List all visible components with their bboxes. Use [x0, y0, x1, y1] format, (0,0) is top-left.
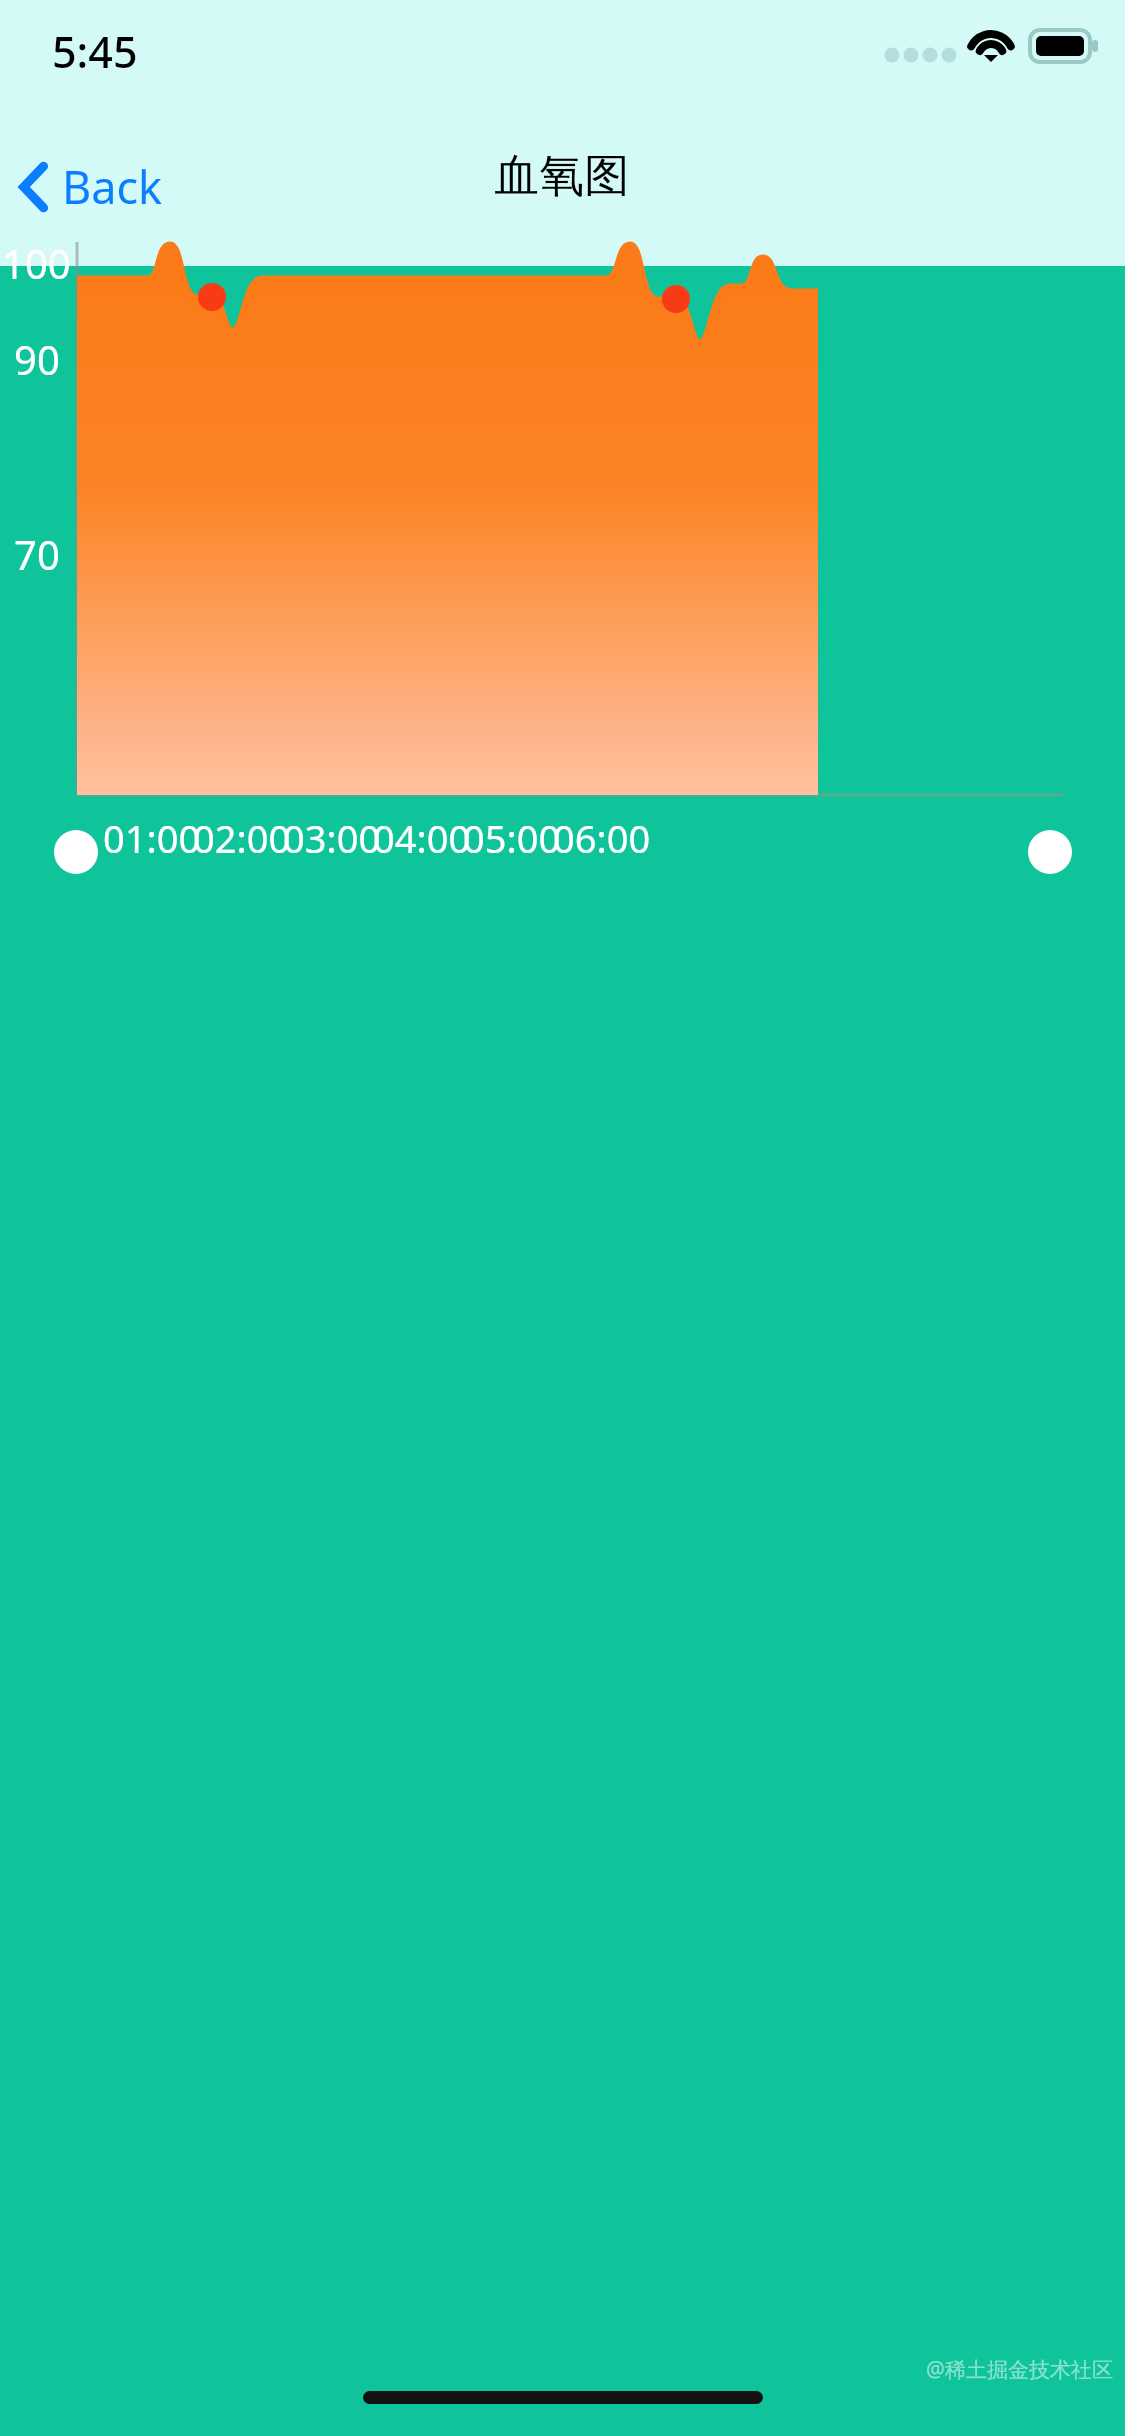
- staticText: 05:00: [463, 812, 561, 864]
- button[interactable]: Back: [6, 146, 175, 227]
- staticText: 70: [14, 527, 60, 581]
- staticText: 5:45: [52, 22, 138, 81]
- staticText: 03:00: [283, 812, 381, 864]
- staticText: 06:00: [553, 812, 651, 864]
- other: Home indicator: [363, 2391, 763, 2404]
- staticText: 90: [14, 332, 60, 386]
- staticText: Back: [62, 156, 163, 217]
- staticText: 血氧图: [494, 148, 629, 205]
- staticText: 100: [2, 236, 71, 290]
- staticText: 04:00: [373, 812, 471, 864]
- staticText: @稀土掘金技术社区: [926, 2355, 1113, 2384]
- staticText: 01:00: [103, 812, 201, 864]
- staticText: 02:00: [193, 812, 291, 864]
